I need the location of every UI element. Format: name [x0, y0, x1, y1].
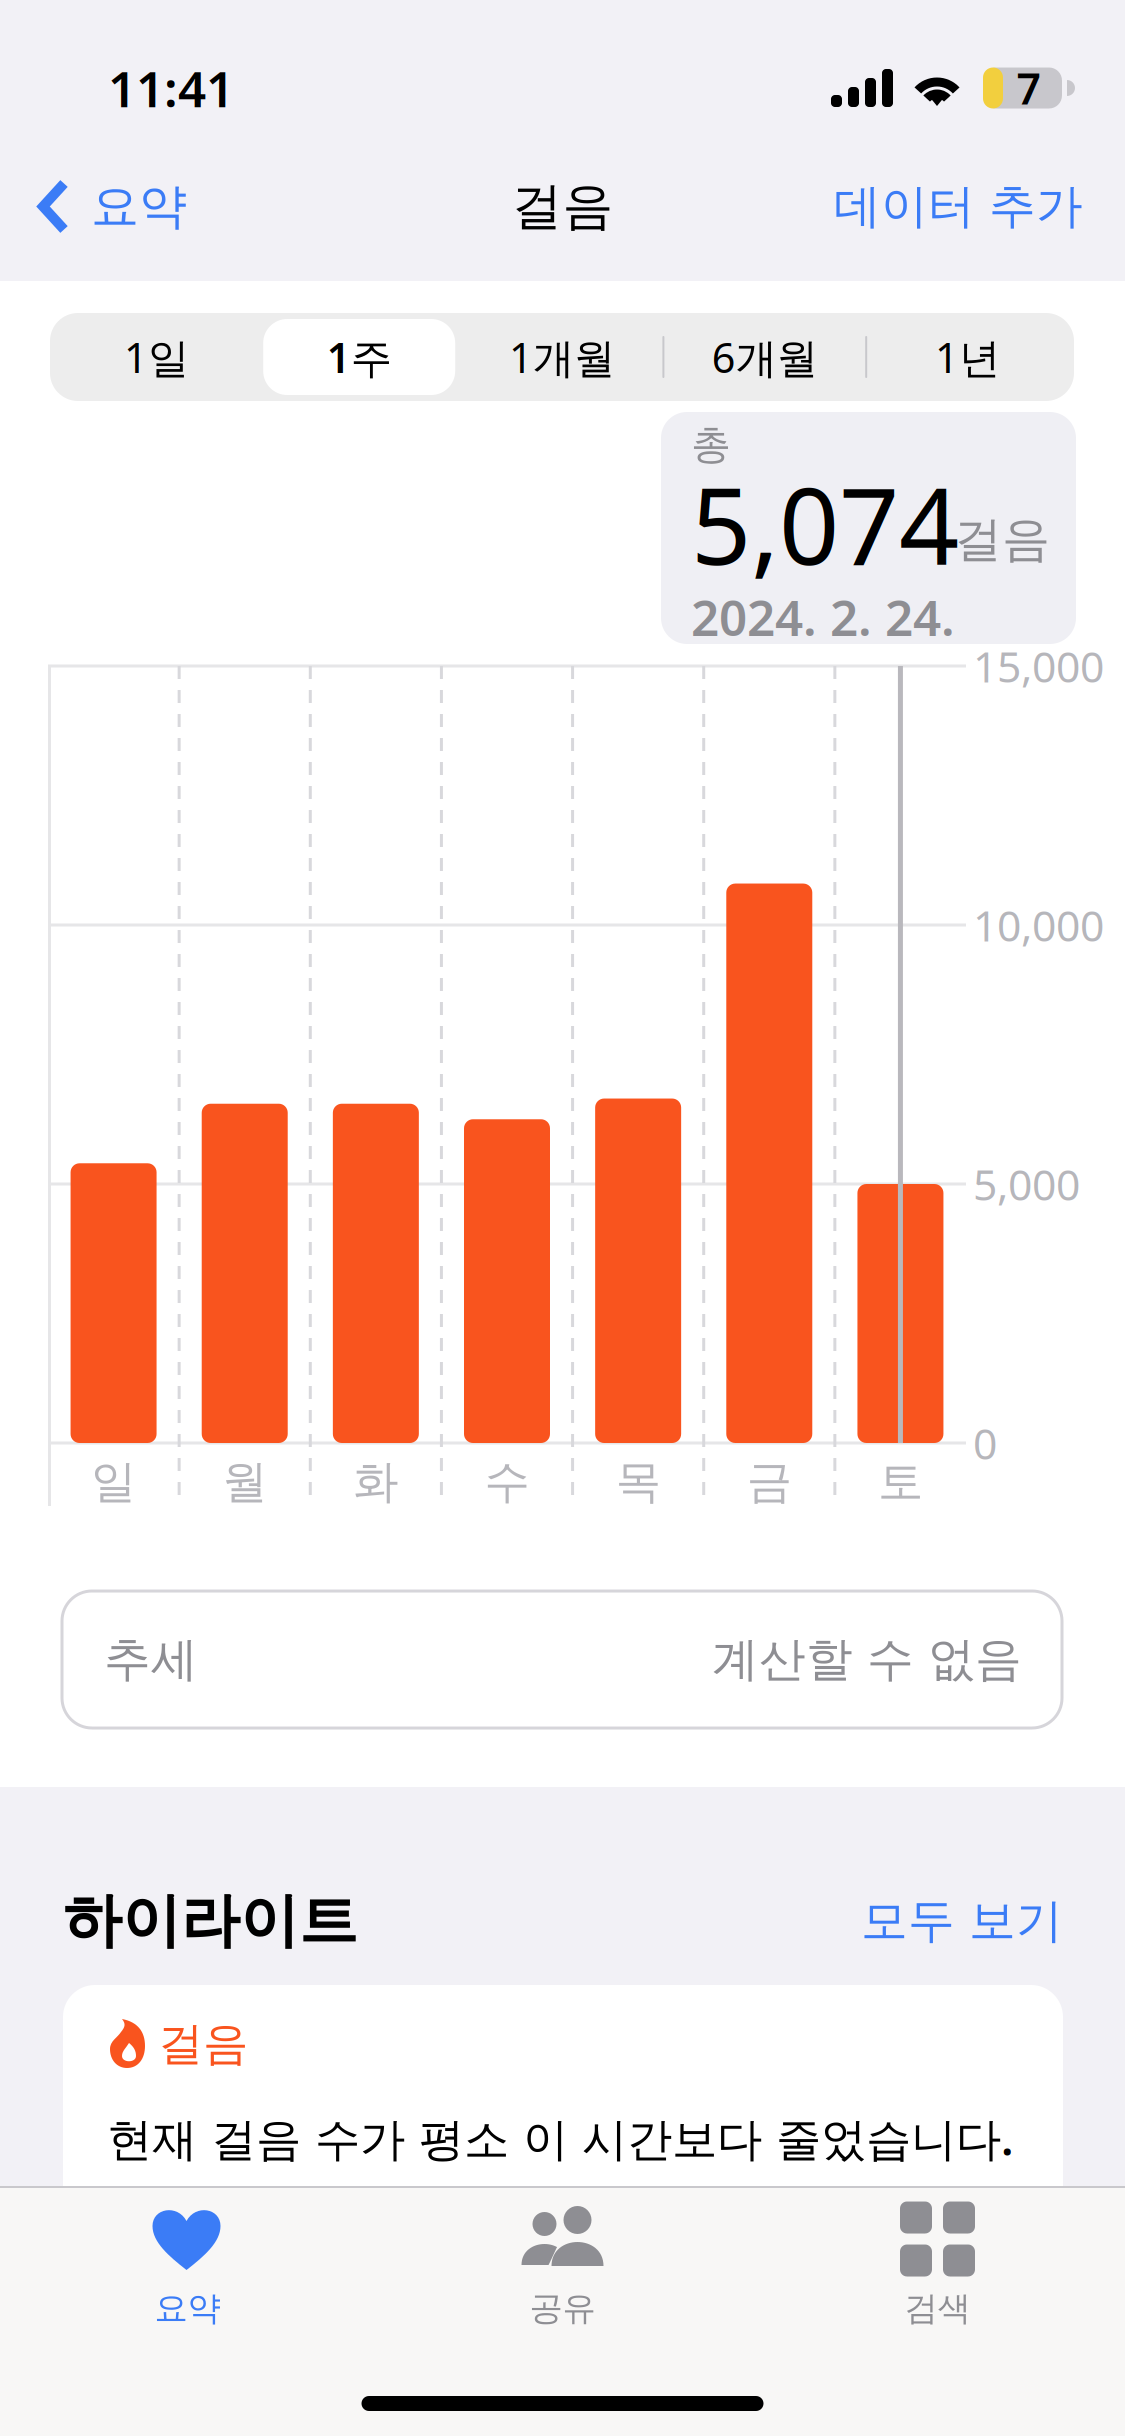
- button[interactable]: 검색: [750, 2204, 1125, 2329]
- staticText: 걸음: [158, 2016, 248, 2072]
- staticText: 7: [1016, 60, 1040, 116]
- staticText: 1개월: [509, 330, 615, 384]
- button[interactable]: 요약: [36, 157, 201, 256]
- button[interactable]: 1개월: [462, 319, 662, 395]
- staticText: 목: [616, 1454, 661, 1510]
- staticText: 1일: [124, 330, 189, 384]
- staticText: 5,074: [691, 454, 959, 594]
- staticText: 10,000: [973, 897, 1104, 953]
- staticText: 요약: [154, 2288, 220, 2329]
- staticText: 하이라이트: [63, 1885, 358, 1957]
- staticText: 1년: [935, 330, 1000, 384]
- staticText: 11:41: [108, 55, 234, 121]
- staticText: 일: [91, 1454, 136, 1510]
- staticText: 15,000: [973, 638, 1104, 694]
- staticText: 총: [691, 420, 731, 469]
- staticText: 5,000: [973, 1156, 1080, 1212]
- staticText: 걸음: [511, 175, 613, 238]
- staticText: 6개월: [712, 330, 818, 384]
- staticText: 수: [484, 1454, 529, 1510]
- staticText: 걸음: [954, 510, 1050, 569]
- button[interactable]: 요약: [0, 2204, 375, 2329]
- staticText: 1주: [327, 330, 392, 384]
- staticText: 토: [878, 1454, 923, 1510]
- staticText: 검색: [904, 2288, 970, 2329]
- staticText: 요약: [91, 177, 187, 236]
- button[interactable]: 공유: [375, 2204, 750, 2329]
- staticText: 추세: [104, 1631, 198, 1688]
- staticText: 월: [222, 1454, 267, 1510]
- staticText: 현재 걸음 수가 평소 이 시간보다 줄었습니다.: [107, 2108, 1014, 2168]
- button[interactable]: 걸음: [0, 1787, 1000, 2087]
- staticText: 모두 보기: [861, 1892, 1063, 1950]
- staticText: 계산할 수 없음: [712, 1631, 1022, 1688]
- button[interactable]: 1일: [56, 319, 257, 395]
- button[interactable]: 6개월: [664, 319, 865, 395]
- staticText: 금: [747, 1454, 792, 1510]
- staticText: 2024. 2. 24.: [691, 584, 955, 649]
- button[interactable]: 1주: [259, 319, 460, 395]
- button[interactable]: 데이터 추가: [820, 158, 1083, 255]
- staticText: 0: [973, 1415, 997, 1471]
- button[interactable]: 추세: [0, 1591, 1062, 1728]
- staticText: 화: [353, 1454, 398, 1510]
- staticText: 공유: [529, 2288, 595, 2329]
- button[interactable]: 모두 보기: [861, 1878, 1063, 1964]
- staticText: 데이터 추가: [834, 178, 1083, 235]
- button[interactable]: 1년: [867, 319, 1068, 395]
